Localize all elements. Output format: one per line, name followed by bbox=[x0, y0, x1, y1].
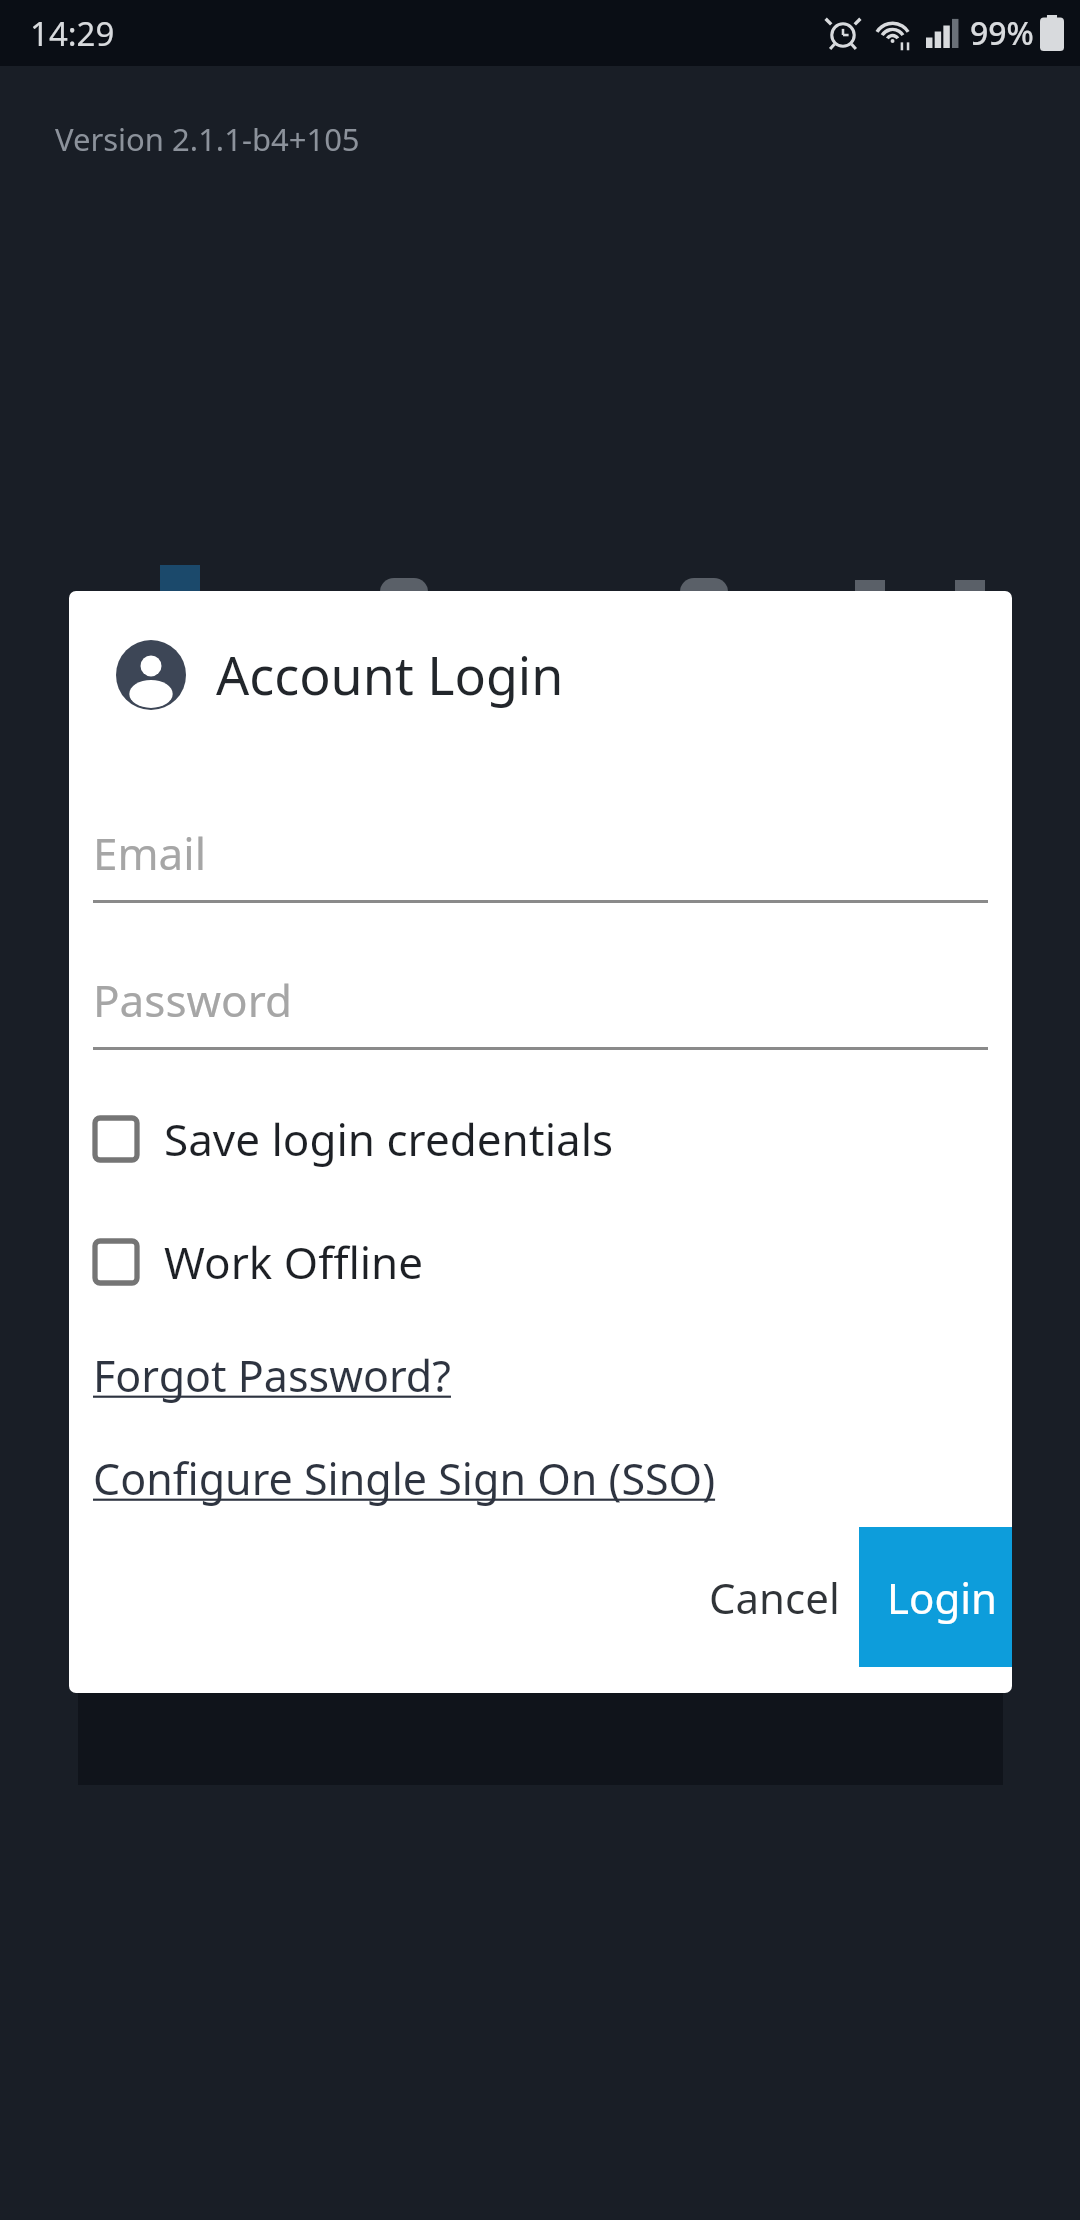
button[interactable]: Password bbox=[93, 958, 988, 1050]
staticText: Version 2.1.1-b4+105 bbox=[55, 118, 360, 160]
other: Account bbox=[116, 640, 186, 710]
staticText: Email bbox=[93, 823, 206, 883]
button[interactable]: Cancel bbox=[689, 1527, 859, 1667]
staticText: Login bbox=[887, 1569, 998, 1626]
staticText: Password bbox=[93, 970, 293, 1030]
staticText: Save login credentials bbox=[164, 1109, 614, 1169]
button[interactable]: Save login credentials bbox=[93, 1091, 793, 1187]
staticText: Account Login bbox=[216, 639, 564, 710]
staticText: 14:29 bbox=[30, 11, 115, 56]
staticText: Work Offline bbox=[164, 1232, 424, 1292]
staticText: Cancel bbox=[709, 1569, 840, 1626]
button[interactable]: Work Offline bbox=[93, 1214, 793, 1310]
button[interactable]: Forgot Password? bbox=[93, 1336, 451, 1414]
button[interactable]: Login bbox=[859, 1527, 1012, 1667]
button[interactable]: Email bbox=[93, 811, 988, 903]
button[interactable]: Configure Single Sign On (SSO) bbox=[93, 1439, 716, 1517]
staticText: Forgot Password? bbox=[93, 1346, 451, 1405]
staticText: Configure Single Sign On (SSO) bbox=[93, 1449, 716, 1508]
staticText: 99% bbox=[970, 11, 1034, 55]
